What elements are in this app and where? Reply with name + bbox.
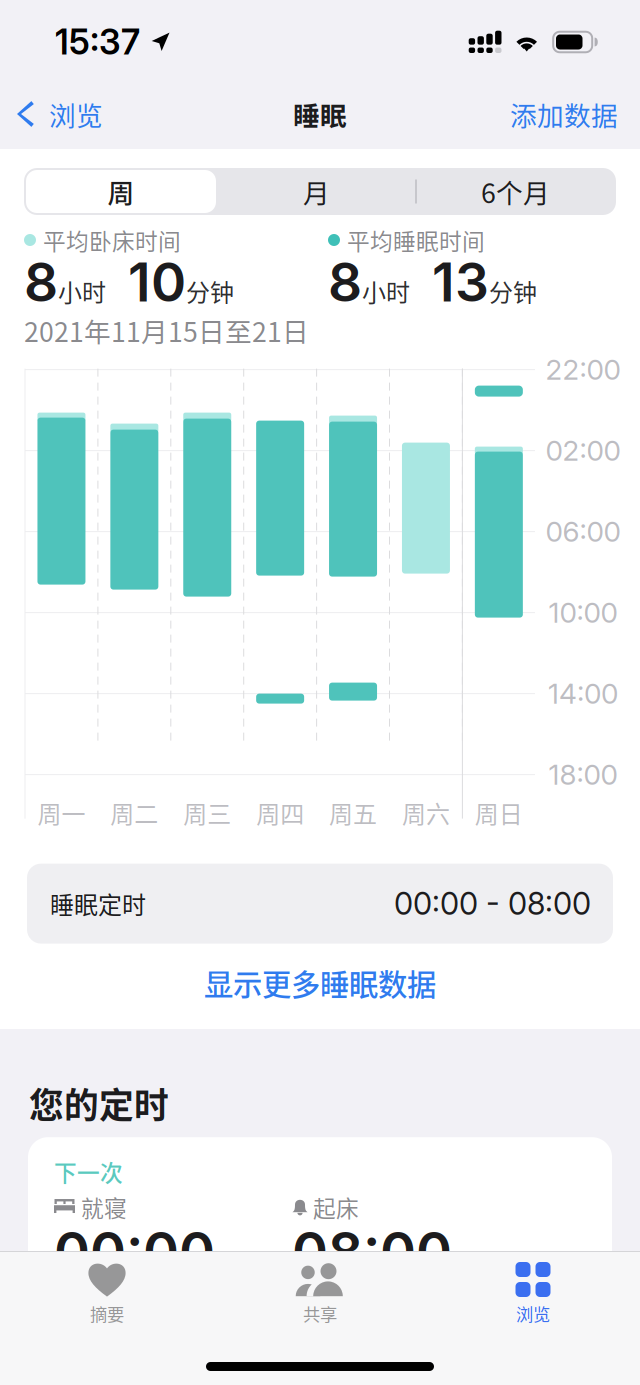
staticText: 周日 bbox=[475, 795, 523, 830]
staticText: 08:00 bbox=[292, 1219, 452, 1285]
staticText: 浏览 bbox=[516, 1301, 550, 1326]
staticText: 您的定时 bbox=[29, 1078, 169, 1128]
button[interactable]: 添加数据 bbox=[488, 84, 640, 144]
staticText: 周三 bbox=[183, 795, 231, 830]
staticText: 周六 bbox=[402, 795, 450, 830]
staticText: 小时 bbox=[362, 274, 410, 308]
staticText: 8 bbox=[24, 250, 58, 314]
staticText: 22:00 bbox=[545, 353, 620, 387]
staticText: 平均卧床时间 bbox=[43, 224, 181, 256]
staticText: 下一次 bbox=[54, 1155, 123, 1188]
staticText: 周五 bbox=[329, 795, 377, 830]
staticText: 就寝 bbox=[81, 1191, 127, 1223]
staticText: 18:00 bbox=[548, 758, 617, 792]
staticText: 00:00 - 08:00 bbox=[394, 885, 591, 922]
staticText: 浏览 bbox=[49, 95, 103, 133]
button[interactable]: 浏览 bbox=[0, 84, 119, 144]
staticText: 小时 bbox=[58, 274, 106, 308]
staticText: 添加数据 bbox=[510, 95, 618, 133]
button[interactable]: 共享 bbox=[213, 1252, 426, 1335]
staticText: 14:00 bbox=[548, 677, 618, 711]
staticText: 00:00 bbox=[54, 1219, 215, 1285]
staticText: 分钟 bbox=[489, 274, 537, 308]
button[interactable]: 周 bbox=[24, 168, 218, 215]
button[interactable]: 6个月 bbox=[415, 168, 616, 215]
staticText: 平均睡眠时间 bbox=[347, 224, 485, 256]
button[interactable]: 月 bbox=[218, 168, 415, 215]
staticText: 显示更多睡眠数据 bbox=[204, 961, 436, 1004]
button[interactable]: 浏览 bbox=[426, 1252, 639, 1335]
staticText: 10:00 bbox=[548, 596, 617, 630]
staticText: 周一 bbox=[37, 795, 85, 830]
staticText: 睡眠 bbox=[293, 95, 347, 133]
staticText: 6个月 bbox=[481, 172, 550, 211]
staticText: 起床 bbox=[313, 1191, 359, 1223]
staticText: 2021年11月15日至21日 bbox=[24, 311, 309, 350]
staticText: 周四 bbox=[256, 795, 304, 830]
staticText: 摘要 bbox=[90, 1301, 124, 1326]
staticText: 13 bbox=[432, 250, 489, 314]
staticText: 06:00 bbox=[545, 515, 620, 549]
button[interactable]: 睡眠定时 bbox=[27, 864, 613, 944]
staticText: 15:37 bbox=[55, 21, 140, 63]
staticText: 10 bbox=[128, 250, 186, 314]
staticText: 月 bbox=[303, 172, 330, 211]
staticText: 睡眠定时 bbox=[50, 886, 146, 921]
button[interactable]: 摘要 bbox=[0, 1252, 213, 1335]
staticText: 周 bbox=[107, 172, 134, 211]
staticText: 8 bbox=[328, 250, 362, 314]
staticText: 周二 bbox=[110, 795, 158, 830]
button[interactable]: 显示更多睡眠数据 bbox=[24, 944, 616, 1022]
staticText: 02:00 bbox=[545, 434, 620, 468]
staticText: 分钟 bbox=[186, 274, 234, 308]
staticText: 共享 bbox=[303, 1301, 337, 1326]
